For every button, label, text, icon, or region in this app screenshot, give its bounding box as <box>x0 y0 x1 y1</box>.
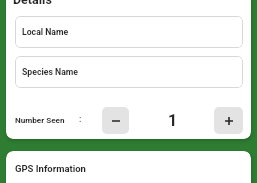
staticText: 1 <box>168 111 178 130</box>
staticText: Details <box>13 0 52 7</box>
button[interactable]: Species Name <box>15 56 243 88</box>
button[interactable]: Decrease count <box>102 107 129 134</box>
staticText: Number Seen <box>15 115 65 124</box>
staticText: Local Name <box>22 27 69 37</box>
staticText: GPS Information <box>15 163 86 174</box>
button[interactable]: Increase count <box>214 107 243 134</box>
staticText: Species Name <box>22 67 79 77</box>
staticText: : <box>79 114 82 125</box>
button[interactable]: Local Name <box>15 16 243 48</box>
